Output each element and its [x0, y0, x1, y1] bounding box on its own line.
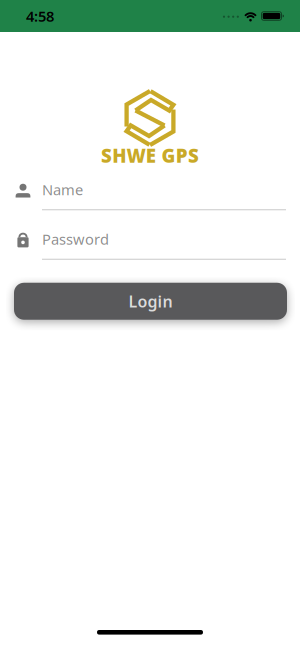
staticText: SHWE GPS	[101, 143, 199, 168]
staticText: Login	[128, 291, 172, 312]
button[interactable]: Name	[0, 180, 300, 210]
staticText: 4:58	[26, 6, 54, 26]
button[interactable]: Login	[14, 283, 287, 320]
staticText: Name	[42, 180, 83, 199]
button[interactable]: Password	[0, 229, 300, 260]
staticText: Password	[42, 229, 109, 249]
